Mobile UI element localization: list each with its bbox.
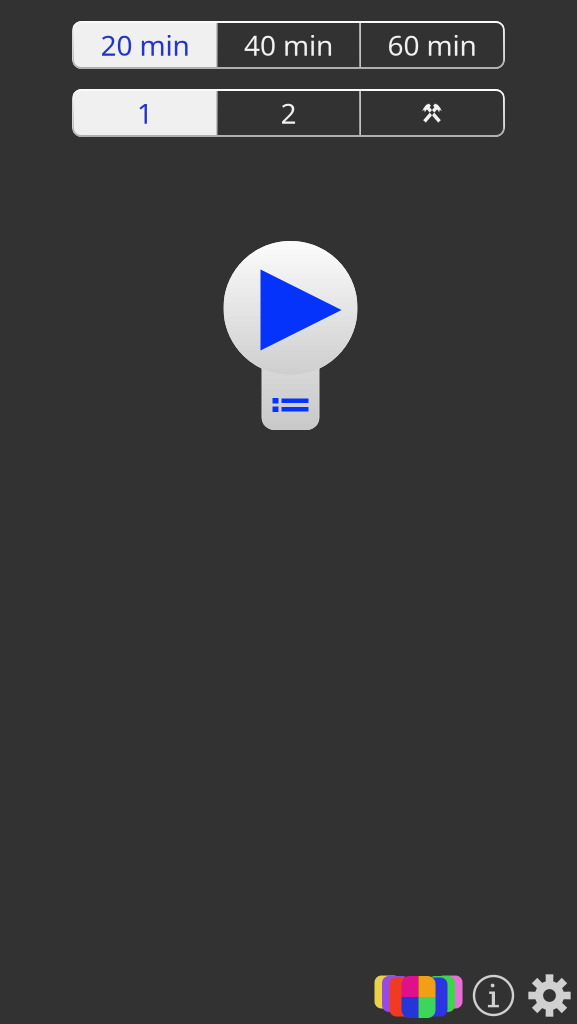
staticText: 60 min: [387, 26, 476, 64]
button[interactable]: 1: [74, 91, 216, 135]
staticText: 2: [280, 94, 296, 132]
button[interactable]: Settings: [524, 970, 574, 1020]
button[interactable]: 2: [217, 91, 359, 135]
button[interactable]: 40 min: [217, 23, 359, 67]
button[interactable]: 20 min: [74, 23, 216, 67]
button[interactable]: [361, 91, 503, 135]
button[interactable]: Presets: [373, 972, 463, 1020]
staticText: 40 min: [244, 26, 333, 64]
button[interactable]: Play: [190, 234, 390, 464]
button[interactable]: Info: [469, 971, 517, 1019]
button[interactable]: 60 min: [361, 23, 503, 67]
staticText: 1: [137, 94, 153, 132]
staticText: 20 min: [100, 26, 189, 64]
